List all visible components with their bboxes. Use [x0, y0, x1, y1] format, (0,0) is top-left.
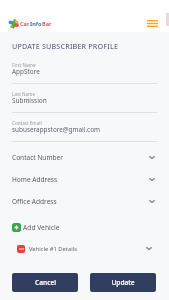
staticText: AppStore: [12, 67, 40, 76]
staticText: Contact Number: [12, 153, 63, 162]
button[interactable]: First Name: [0, 62, 169, 84]
button[interactable]: Cancel: [12, 273, 78, 292]
staticText: Last Name: [12, 91, 35, 97]
button[interactable]: Add Vehicle: [0, 218, 169, 237]
staticText: Car: [20, 20, 30, 28]
staticText: Home Address: [12, 175, 58, 184]
button[interactable]: Vehicle #1 Details: [0, 239, 169, 258]
button[interactable]: Update: [90, 273, 156, 292]
button[interactable]: Office Address: [0, 190, 169, 212]
staticText: UPDATE SUBSCRIBER PROFILE: [12, 41, 119, 51]
staticText: Info: [30, 20, 42, 28]
button[interactable]: Menu: [145, 16, 160, 31]
staticText: Vehicle #1 Details: [29, 245, 77, 253]
staticText: Contact Email: [12, 120, 42, 126]
staticText: Update: [111, 278, 135, 287]
staticText: Submission: [12, 96, 47, 105]
button[interactable]: Home Address: [0, 168, 169, 190]
staticText: Cancel: [35, 278, 56, 287]
staticText: Bar: [42, 20, 52, 28]
staticText: Office Address: [12, 197, 57, 206]
button[interactable]: Contact Number: [0, 146, 169, 168]
staticText: First Name: [12, 62, 36, 68]
staticText: subuserappstore@gmail.com: [12, 125, 101, 134]
staticText: Add Vehicle: [23, 223, 60, 232]
button[interactable]: Contact Email: [0, 120, 169, 142]
button[interactable]: Last Name: [0, 91, 169, 113]
